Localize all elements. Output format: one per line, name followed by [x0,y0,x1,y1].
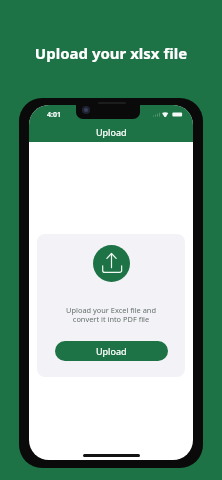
staticText: Upload your xlsx file [0,43,222,63]
staticText: Upload your Excel file and convert it in… [66,305,156,325]
staticText: Upload [96,345,127,357]
button[interactable]: Upload [55,341,168,361]
button[interactable]: Upload file [93,245,130,282]
staticText: 4:01 [47,110,61,120]
staticText: Upload [96,126,127,138]
